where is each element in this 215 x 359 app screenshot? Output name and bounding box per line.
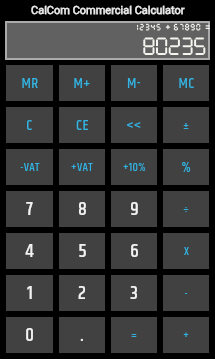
staticText: 7: [26, 195, 33, 224]
staticText: ÷: [183, 200, 189, 218]
button[interactable]: M+: [59, 65, 105, 101]
staticText: X: [184, 242, 189, 260]
staticText: 3: [130, 279, 138, 308]
button[interactable]: +VAT: [59, 149, 105, 185]
staticText: +10%: [123, 158, 146, 176]
button[interactable]: +: [163, 317, 209, 353]
button[interactable]: ±: [163, 107, 209, 143]
button[interactable]: %: [163, 149, 209, 185]
staticText: -VAT: [20, 158, 40, 176]
button[interactable]: 5: [59, 233, 105, 269]
staticText: 1: [27, 279, 33, 308]
staticText: %: [181, 156, 191, 179]
button[interactable]: M-: [111, 65, 157, 101]
button[interactable]: 1: [6, 275, 53, 311]
staticText: +: [183, 326, 189, 344]
button[interactable]: MC: [163, 65, 209, 101]
button[interactable]: ÷: [163, 191, 209, 227]
staticText: <<: [126, 114, 142, 137]
button[interactable]: X: [163, 233, 209, 269]
button[interactable]: -VAT: [6, 149, 53, 185]
button[interactable]: <<: [111, 107, 157, 143]
button[interactable]: .: [59, 317, 105, 353]
staticText: =: [131, 326, 137, 344]
staticText: +VAT: [71, 158, 93, 176]
staticText: 9: [130, 195, 139, 224]
staticText: 4: [25, 237, 34, 266]
button[interactable]: CE: [59, 107, 105, 143]
staticText: ±: [183, 116, 189, 134]
button[interactable]: 6: [111, 233, 157, 269]
staticText: M+: [73, 72, 91, 95]
staticText: -: [184, 284, 188, 302]
button[interactable]: -: [163, 275, 209, 311]
staticText: 6: [130, 237, 139, 266]
button[interactable]: 9: [111, 191, 157, 227]
button[interactable]: =: [111, 317, 157, 353]
staticText: 2: [78, 279, 86, 308]
staticText: MC: [178, 72, 195, 95]
button[interactable]: 4: [6, 233, 53, 269]
staticText: C: [26, 114, 33, 137]
button[interactable]: MR: [6, 65, 53, 101]
button[interactable]: 7: [6, 191, 53, 227]
staticText: MR: [21, 72, 39, 95]
button[interactable]: C: [6, 107, 53, 143]
button[interactable]: 0: [6, 317, 53, 353]
staticText: 5: [78, 237, 87, 266]
button[interactable]: 8: [59, 191, 105, 227]
staticText: 0: [25, 321, 34, 350]
staticText: CE: [76, 114, 89, 137]
staticText: .: [80, 321, 84, 350]
button[interactable]: +10%: [111, 149, 157, 185]
staticText: 8: [78, 195, 87, 224]
staticText: M-: [127, 72, 141, 95]
button[interactable]: 2: [59, 275, 105, 311]
staticText: CalCom Commercial Calculator: [31, 4, 185, 17]
button[interactable]: 3: [111, 275, 157, 311]
